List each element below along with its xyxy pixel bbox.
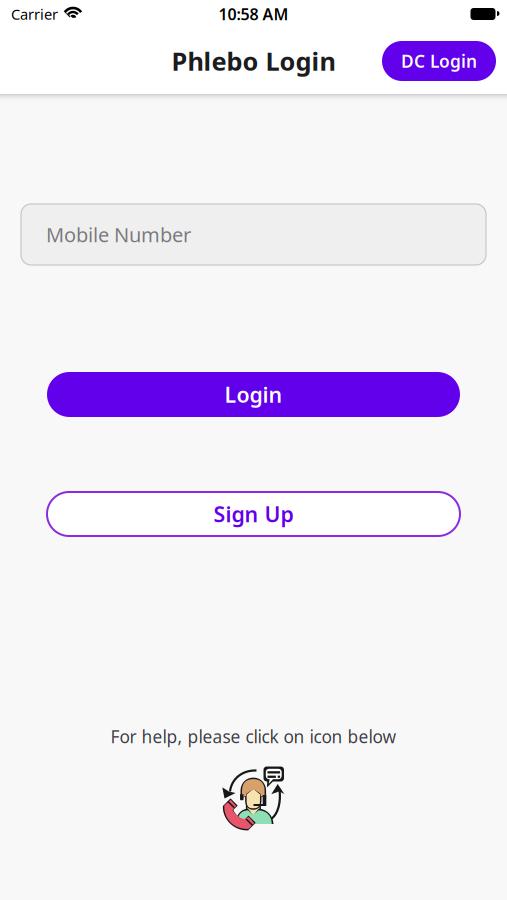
- staticText: Login: [224, 380, 282, 409]
- button[interactable]: DC Login: [382, 41, 496, 81]
- staticText: Sign Up: [213, 500, 293, 528]
- button[interactable]: Help: [219, 764, 287, 832]
- button[interactable]: Sign Up: [47, 492, 460, 536]
- button[interactable]: Mobile Number: [21, 204, 486, 265]
- staticText: Mobile Number: [46, 221, 191, 248]
- staticText: Carrier: [11, 4, 58, 24]
- staticText: Phlebo Login: [171, 44, 335, 78]
- button[interactable]: Login: [47, 372, 460, 417]
- staticText: DC Login: [401, 49, 477, 72]
- staticText: 10:58 AM: [218, 3, 288, 25]
- staticText: For help, please click on icon below: [110, 725, 396, 748]
